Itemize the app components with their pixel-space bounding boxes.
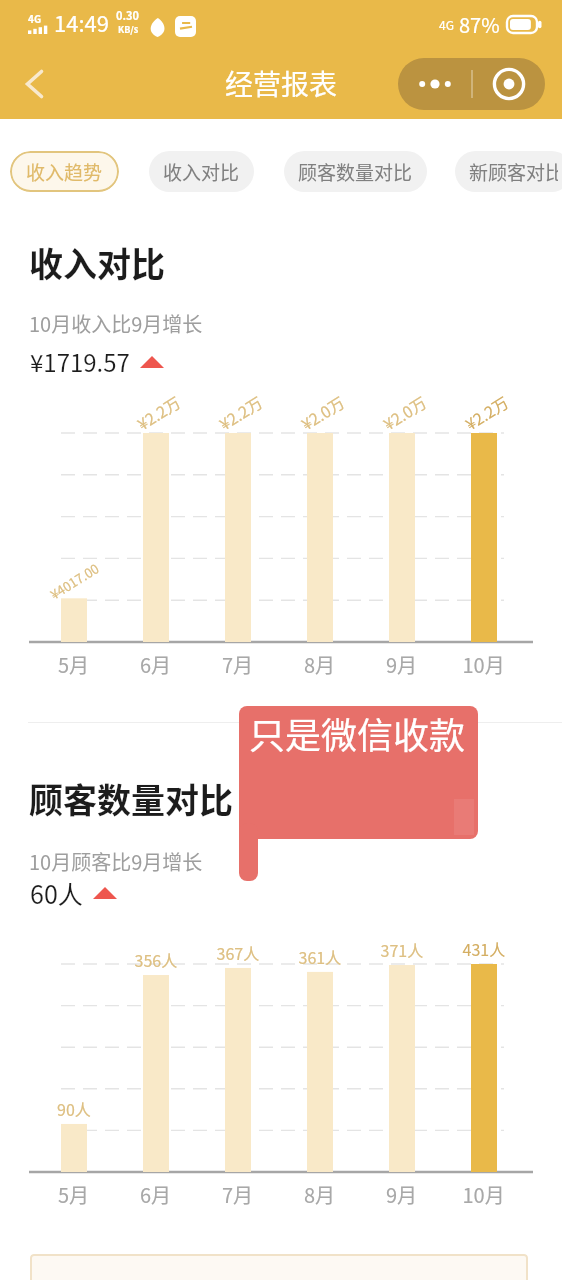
button[interactable]: 收入趋势 (10, 151, 119, 192)
button[interactable]: Back (12, 62, 56, 106)
staticText: 收入趋势 (26, 158, 103, 186)
staticText: 0.30 (116, 7, 140, 23)
staticText: 经营报表 (225, 63, 338, 104)
staticText: 收入对比 (163, 158, 240, 186)
staticText: ¥1719.57 (30, 344, 130, 379)
staticText: 顾客数量对比 (29, 774, 233, 823)
staticText: 新顾客对比 (469, 158, 558, 186)
staticText: 只是微信收款 (249, 707, 466, 759)
staticText: 14:49 (54, 6, 109, 38)
staticText: 收入对比 (29, 238, 165, 287)
staticText: 4G (28, 11, 42, 25)
button[interactable]: 新顾客对比 (455, 151, 562, 192)
button[interactable]: Close (473, 58, 545, 110)
staticText: 10月顾客比9月增长 (29, 847, 203, 876)
staticText: 顾客数量对比 (298, 158, 413, 186)
staticText: 4G (439, 16, 454, 33)
staticText: 60人 (30, 875, 83, 911)
staticText: 10月收入比9月增长 (29, 309, 203, 338)
staticText: 87% (459, 10, 500, 39)
staticText: KB/s (118, 23, 139, 36)
button[interactable]: More options (398, 58, 471, 110)
button[interactable]: 收入对比 (149, 151, 254, 192)
button[interactable] (30, 1254, 528, 1280)
button[interactable]: 顾客数量对比 (284, 151, 427, 192)
